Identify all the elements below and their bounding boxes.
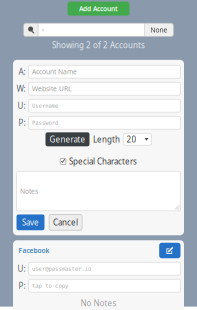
staticText: Special Characters xyxy=(69,156,137,167)
button[interactable]: None xyxy=(144,23,173,37)
staticText: W: xyxy=(16,83,25,94)
staticText: P: xyxy=(18,280,25,291)
staticText: Account Name xyxy=(32,67,77,76)
staticText: Add Account xyxy=(79,4,118,13)
button[interactable]: Edit Facebook account xyxy=(159,243,180,258)
staticText: Notes xyxy=(20,187,38,195)
button[interactable]: Save xyxy=(16,214,44,230)
staticText: None xyxy=(150,25,167,34)
staticText: Generate xyxy=(49,134,85,145)
staticText: U: xyxy=(17,100,25,111)
staticText: 20 xyxy=(126,134,136,145)
staticText: tap to copy xyxy=(32,282,68,289)
staticText: Cancel xyxy=(53,217,78,228)
staticText: P: xyxy=(18,117,25,128)
staticText: user@passmaster.io xyxy=(32,265,91,272)
staticText: Showing 2 of 2 Accounts xyxy=(52,40,145,50)
staticText: Password xyxy=(32,119,58,126)
button[interactable]: Add Account xyxy=(67,2,129,16)
button[interactable]: Generate xyxy=(45,132,89,146)
staticText: Length xyxy=(93,134,120,145)
staticText: Save xyxy=(22,217,39,228)
staticText: U: xyxy=(17,263,25,274)
button[interactable]: 20 xyxy=(123,133,151,145)
staticText: No Notes xyxy=(80,298,116,308)
staticText: Website URL xyxy=(32,84,71,93)
button[interactable]: Cancel xyxy=(49,214,82,230)
staticText: Facebook xyxy=(18,246,49,255)
staticText: Username xyxy=(32,102,58,109)
staticText: A: xyxy=(18,66,25,77)
